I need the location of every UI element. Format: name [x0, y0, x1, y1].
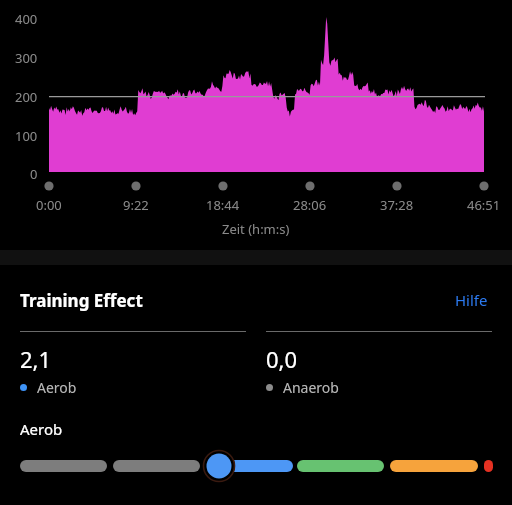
staticText: Anaerob — [283, 378, 339, 397]
staticText: Zeit (h:m:s) — [222, 220, 290, 238]
staticText: Aerob — [37, 378, 77, 397]
button[interactable]: 0,0 — [266, 331, 492, 397]
staticText: 28:06 — [293, 196, 327, 214]
staticText: 400 — [15, 10, 38, 28]
staticText: Aerob — [20, 419, 63, 439]
staticText: Hilfe — [455, 290, 488, 310]
staticText: 0 — [30, 165, 38, 183]
staticText: 9:22 — [123, 196, 149, 214]
button[interactable]: Aerober Trainingseffekt Zone — [20, 453, 492, 479]
staticText: 18:44 — [206, 196, 240, 214]
staticText: 200 — [15, 88, 38, 106]
button[interactable]: Hilfe — [451, 287, 492, 313]
button[interactable]: 2,1 — [20, 331, 246, 397]
staticText: 2,1 — [20, 344, 52, 374]
staticText: 0,0 — [266, 344, 298, 374]
staticText: 0:00 — [36, 196, 62, 214]
staticText: 300 — [15, 49, 38, 67]
staticText: 37:28 — [380, 196, 414, 214]
staticText: 100 — [15, 127, 38, 145]
staticText: 46:51 — [467, 196, 501, 214]
staticText: Training Effect — [20, 289, 143, 312]
